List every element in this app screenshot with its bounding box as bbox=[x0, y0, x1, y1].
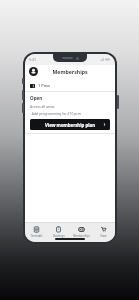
staticText: Open bbox=[30, 95, 43, 101]
staticText: Memberships bbox=[73, 234, 90, 238]
staticText: Timetable bbox=[30, 234, 43, 238]
button[interactable]: Account bbox=[29, 67, 38, 76]
staticText: View membership plan bbox=[45, 122, 95, 128]
button[interactable]: Timetable bbox=[26, 225, 47, 239]
staticText: Store bbox=[100, 234, 107, 238]
staticText: 1 Pass bbox=[38, 83, 50, 88]
staticText: · Add programming for £10 pcm bbox=[30, 111, 82, 116]
staticText: Access all areas bbox=[30, 104, 55, 109]
button[interactable]: Store bbox=[93, 225, 114, 239]
button[interactable]: 1 Pass bbox=[25, 80, 115, 91]
button[interactable]: View membership plan bbox=[30, 119, 110, 130]
staticText: Bookings bbox=[53, 234, 65, 238]
staticText: 9:41 bbox=[29, 57, 36, 62]
staticText: Memberships bbox=[52, 68, 88, 75]
button[interactable]: Bookings bbox=[48, 225, 69, 239]
button[interactable]: Memberships bbox=[71, 225, 92, 239]
